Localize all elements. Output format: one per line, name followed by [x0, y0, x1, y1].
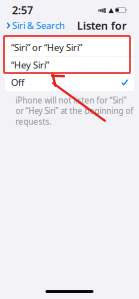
- staticText: Listen for: [77, 18, 127, 33]
- staticText: Off: [11, 76, 24, 89]
- staticText: iPhone will not listen for “Siri” or “He…: [15, 95, 133, 127]
- staticText: “Hey Siri”: [11, 59, 49, 71]
- staticText: ▲: [109, 6, 114, 14]
- button[interactable]: Off: [5, 74, 134, 91]
- staticText: Siri & Search: [12, 19, 65, 32]
- button[interactable]: Siri & Search: [3, 16, 65, 35]
- staticText: 2:57: [12, 3, 33, 17]
- button[interactable]: “Hey Siri”: [5, 56, 134, 73]
- staticText: “Siri” or “Hey Siri”: [11, 41, 82, 54]
- button[interactable]: “Siri” or “Hey Siri”: [5, 39, 134, 56]
